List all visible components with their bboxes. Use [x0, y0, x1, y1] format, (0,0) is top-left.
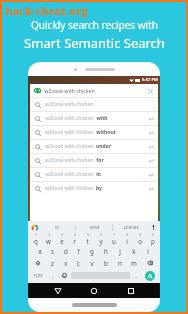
staticText: w2cook with chicken: [45, 115, 94, 122]
staticText: w2cook with chicken: [44, 87, 95, 94]
button[interactable]: w2cook with chicken: [30, 126, 158, 139]
staticText: k: [132, 247, 136, 255]
staticText: Quickly search recipes with: [31, 18, 158, 32]
staticText: Smart Semantic Search: [24, 34, 165, 52]
staticText: g: [90, 247, 94, 255]
staticText: ?123: [33, 273, 43, 279]
button[interactable]: Google: [30, 223, 39, 232]
button[interactable]: Clear: [146, 87, 154, 95]
button[interactable]: Home: [87, 284, 101, 298]
staticText: with: [96, 115, 108, 122]
staticText: q: [34, 237, 38, 245]
button[interactable]: w2cook with chicken: [30, 168, 158, 181]
button[interactable]: is: [39, 221, 75, 233]
staticText: t: [86, 237, 89, 245]
button[interactable]: 2: [42, 233, 55, 245]
button[interactable]: z: [46, 257, 59, 269]
button[interactable]: 6: [94, 233, 107, 245]
staticText: hack-cheat.org: [5, 3, 88, 18]
button[interactable]: j: [113, 245, 127, 257]
button[interactable]: w2cook with chicken: [30, 154, 158, 167]
button[interactable]: .: [130, 269, 141, 282]
button[interactable]: w2cook with chicken: [30, 84, 158, 97]
button[interactable]: 4: [68, 233, 81, 245]
button[interactable]: Use suggestion: [147, 143, 154, 150]
button[interactable]: Recents: [124, 284, 138, 298]
staticText: x: [64, 259, 68, 267]
staticText: under: [96, 143, 111, 150]
button[interactable]: Back: [51, 284, 65, 298]
staticText: w2cook with chicken: [45, 129, 94, 136]
staticText: 5: [87, 233, 89, 237]
button[interactable]: w2cook with chicken: [30, 112, 158, 125]
button[interactable]: 5: [81, 233, 94, 245]
button[interactable]: c: [72, 257, 85, 269]
button[interactable]: ,: [47, 269, 58, 282]
button[interactable]: 7: [107, 233, 120, 245]
button[interactable]: l: [141, 245, 155, 257]
button[interactable]: m: [127, 257, 141, 269]
button[interactable]: Voice input: [149, 223, 158, 232]
button[interactable]: Backspace: [141, 257, 159, 269]
button[interactable]: Use suggestion: [147, 115, 154, 122]
button[interactable]: 1: [29, 233, 42, 245]
button[interactable]: Use suggestion: [147, 185, 154, 192]
button[interactable]: b: [99, 257, 113, 269]
button[interactable]: Search: [145, 271, 155, 281]
button[interactable]: n: [113, 257, 127, 269]
staticText: ,: [52, 272, 54, 279]
staticText: p: [151, 237, 155, 245]
button[interactable]: f: [72, 245, 85, 257]
staticText: 3: [61, 233, 63, 237]
staticText: without: [96, 129, 116, 136]
button[interactable]: 3: [55, 233, 68, 245]
button[interactable]: w2cook with chicken: [30, 140, 158, 153]
staticText: e: [60, 237, 64, 245]
button[interactable]: d: [59, 245, 72, 257]
staticText: l: [147, 247, 149, 255]
staticText: b: [104, 259, 108, 267]
button[interactable]: Use suggestion: [147, 171, 154, 178]
button[interactable]: pieces: [113, 221, 149, 233]
button[interactable]: Use suggestion: [147, 157, 154, 164]
staticText: 9: [139, 233, 141, 237]
button[interactable]: w2cook with chicken: [30, 182, 158, 195]
button[interactable]: x: [59, 257, 72, 269]
button[interactable]: Emoji: [58, 269, 71, 282]
button[interactable]: Shift: [29, 257, 46, 269]
staticText: v: [90, 259, 94, 267]
staticText: s: [51, 247, 54, 255]
button[interactable]: and: [76, 221, 112, 233]
staticText: 8: [126, 233, 128, 237]
staticText: 5:07 PM: [142, 77, 158, 83]
button[interactable]: v: [85, 257, 99, 269]
staticText: o: [138, 237, 142, 245]
staticText: m: [131, 259, 137, 267]
button[interactable]: 9: [133, 233, 146, 245]
button[interactable]: h: [99, 245, 113, 257]
button[interactable]: g: [85, 245, 99, 257]
button[interactable]: 8: [120, 233, 133, 245]
staticText: in: [96, 171, 101, 178]
staticText: d: [64, 247, 68, 255]
staticText: z: [51, 259, 54, 267]
staticText: j: [119, 247, 121, 255]
button[interactable]: s: [46, 245, 59, 257]
staticText: u: [112, 237, 116, 245]
staticText: 1: [35, 233, 37, 237]
staticText: w2cook with chicken: [45, 171, 94, 178]
staticText: c: [77, 259, 80, 267]
staticText: a: [38, 247, 42, 255]
button[interactable]: 0: [146, 233, 159, 245]
staticText: 0: [152, 233, 154, 237]
button[interactable]: Use suggestion: [147, 129, 154, 136]
button[interactable]: ?123: [29, 269, 47, 282]
staticText: i: [126, 237, 128, 245]
button[interactable]: w2cook with chicken: [30, 98, 158, 111]
button[interactable]: a: [33, 245, 46, 257]
staticText: w2cook with chicken: [45, 101, 94, 108]
staticText: f: [77, 247, 80, 255]
staticText: w2cook with chicken: [45, 143, 94, 150]
button[interactable]: k: [127, 245, 141, 257]
